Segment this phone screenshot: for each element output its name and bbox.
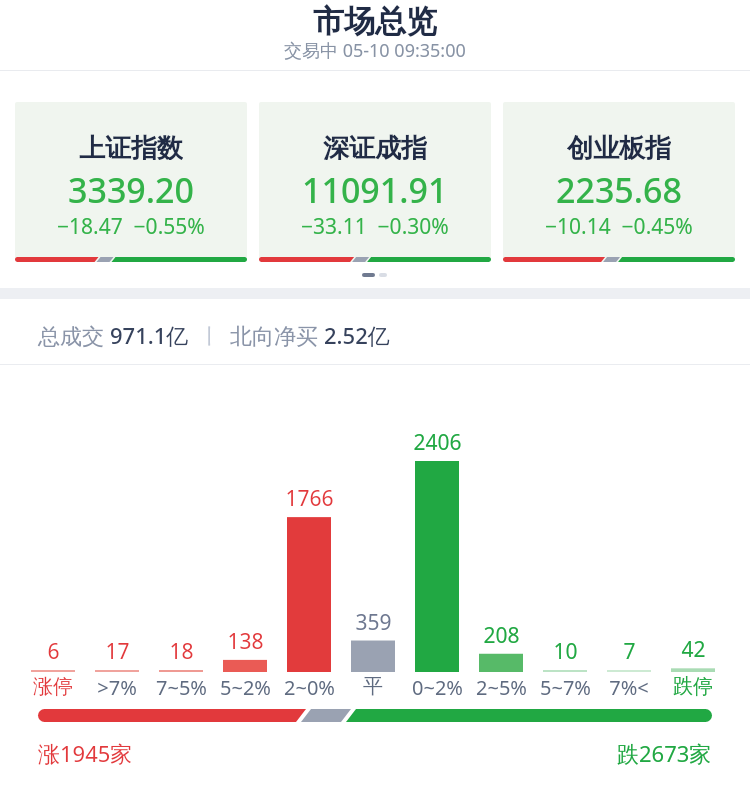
- staticText: 1766: [285, 484, 334, 510]
- staticText: 138: [227, 627, 264, 653]
- staticText: 平: [363, 674, 383, 698]
- staticText: 2~5%: [476, 674, 527, 698]
- staticText: 上证指数: [79, 132, 183, 160]
- staticText: 2406: [413, 428, 462, 454]
- button[interactable]: 上证指数: [15, 102, 247, 262]
- staticText: 北向净买: [230, 320, 324, 350]
- staticText: 11091.91: [302, 167, 448, 205]
- staticText: 涨1945家: [38, 738, 133, 766]
- staticText: 5~7%: [540, 674, 591, 698]
- staticText: >7%: [97, 674, 137, 698]
- staticText: 359: [355, 608, 392, 634]
- staticText: 17: [105, 637, 130, 663]
- staticText: 18: [169, 637, 194, 663]
- button[interactable]: >7%: [72, 674, 162, 698]
- staticText: −10.14 −0.45%: [545, 212, 693, 236]
- staticText: 0~2%: [412, 674, 463, 698]
- button[interactable]: 7%<: [584, 674, 674, 698]
- button[interactable]: 跌停: [648, 674, 738, 698]
- button[interactable]: 创业板指: [503, 102, 735, 262]
- staticText: 7~5%: [156, 674, 207, 698]
- staticText: 7: [623, 637, 636, 663]
- staticText: 10: [553, 637, 578, 663]
- staticText: 2.52亿: [324, 320, 390, 350]
- staticText: −18.47 −0.55%: [57, 212, 205, 236]
- staticText: 跌2673家: [617, 738, 712, 766]
- button[interactable]: 5~2%: [200, 674, 290, 698]
- staticText: 7%<: [609, 674, 649, 698]
- staticText: 创业板指: [567, 132, 671, 160]
- staticText: 深证成指: [323, 132, 427, 160]
- button[interactable]: 总成交: [38, 320, 390, 350]
- button[interactable]: 7~5%: [136, 674, 226, 698]
- staticText: 6: [47, 637, 60, 663]
- staticText: 跌停: [673, 674, 713, 698]
- staticText: −33.11 −0.30%: [301, 212, 449, 236]
- staticText: 5~2%: [220, 674, 271, 698]
- staticText: 971.1亿: [110, 320, 189, 350]
- button[interactable]: 涨停: [8, 674, 98, 698]
- button[interactable]: 2~0%: [264, 674, 354, 698]
- staticText: 3339.20: [68, 167, 194, 205]
- staticText: 42: [681, 635, 706, 661]
- staticText: 2~0%: [284, 674, 335, 698]
- button[interactable]: 2~5%: [456, 674, 546, 698]
- button[interactable]: 5~7%: [520, 674, 610, 698]
- staticText: 涨停: [33, 674, 73, 698]
- staticText: 208: [483, 621, 520, 647]
- staticText: 市场总览: [313, 2, 437, 38]
- button[interactable]: 平: [328, 674, 418, 698]
- staticText: 2235.68: [556, 167, 682, 205]
- button[interactable]: 深证成指: [259, 102, 491, 262]
- staticText: 丨: [189, 322, 230, 349]
- staticText: 交易中 05-10 09:35:00: [284, 38, 466, 60]
- button[interactable]: 0~2%: [392, 674, 482, 698]
- staticText: 总成交: [38, 320, 110, 350]
